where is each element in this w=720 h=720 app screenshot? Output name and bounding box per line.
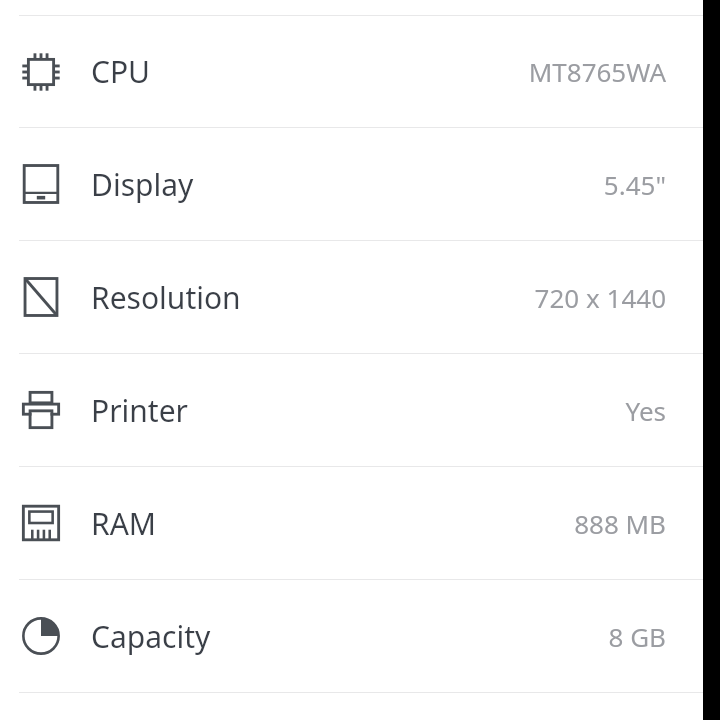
button[interactable]: CPU [0, 16, 703, 127]
staticText: MT8765WA [528, 54, 666, 89]
staticText: Capacity [91, 616, 211, 657]
staticText: 8 GB [608, 619, 666, 654]
button[interactable]: Printer [0, 354, 703, 466]
staticText: Display [91, 164, 194, 205]
staticText: Resolution [91, 277, 241, 318]
other: Resolution [20, 276, 62, 318]
other: Printer [20, 389, 62, 431]
staticText: 5.45" [603, 167, 666, 202]
staticText: Printer [91, 390, 188, 431]
other: CPU [20, 51, 62, 93]
other: Display [20, 163, 62, 205]
staticText: 720 x 1440 [534, 280, 666, 315]
staticText: CPU [91, 51, 151, 92]
button[interactable]: RAM [0, 467, 703, 579]
other: Capacity [20, 615, 62, 657]
button[interactable]: Display [0, 128, 703, 240]
button[interactable]: Capacity [0, 580, 703, 692]
other: RAM [20, 502, 62, 544]
button[interactable]: Resolution [0, 241, 703, 353]
staticText: 888 MB [574, 506, 666, 541]
staticText: Yes [625, 393, 666, 428]
staticText: RAM [91, 503, 157, 544]
